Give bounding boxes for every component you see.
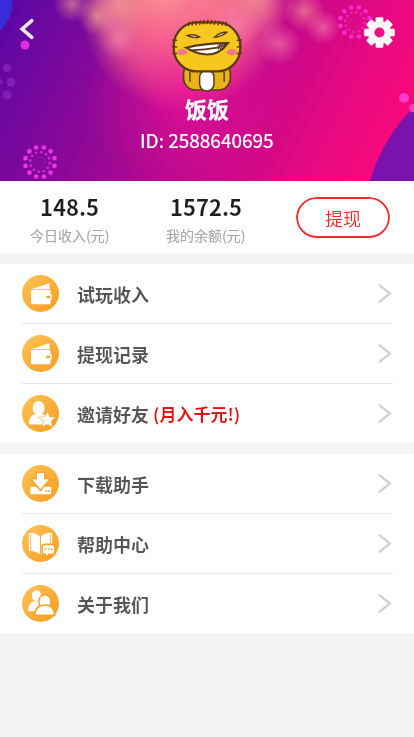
button[interactable]: 关于我们	[0, 574, 414, 633]
staticText: 提现	[325, 205, 361, 231]
staticText: 试玩收入	[77, 281, 149, 307]
staticText: 邀请好友	[77, 401, 149, 427]
button[interactable]: 帮助中心	[0, 514, 414, 573]
button[interactable]: 提现	[296, 197, 390, 238]
staticText: 关于我们	[77, 591, 149, 617]
staticText: 148.5	[40, 190, 100, 222]
button[interactable]: 试玩收入	[0, 264, 414, 323]
button[interactable]: 提现记录	[0, 324, 414, 383]
staticText: 帮助中心	[77, 531, 149, 557]
button[interactable]: 邀请好友	[0, 384, 414, 443]
button[interactable]: Back	[8, 10, 46, 48]
staticText: 我的余额(元)	[166, 225, 246, 245]
staticText: 今日收入(元)	[30, 225, 110, 245]
staticText: 提现记录	[77, 341, 149, 367]
staticText: 1572.5	[170, 190, 243, 222]
staticText: 下载助手	[77, 471, 149, 497]
button[interactable]: 下载助手	[0, 454, 414, 513]
staticText: ID: 2588640695	[140, 126, 274, 154]
button[interactable]: Settings	[361, 14, 397, 50]
staticText: 饭饭	[185, 92, 230, 124]
staticText: (月入千元!)	[153, 401, 241, 426]
